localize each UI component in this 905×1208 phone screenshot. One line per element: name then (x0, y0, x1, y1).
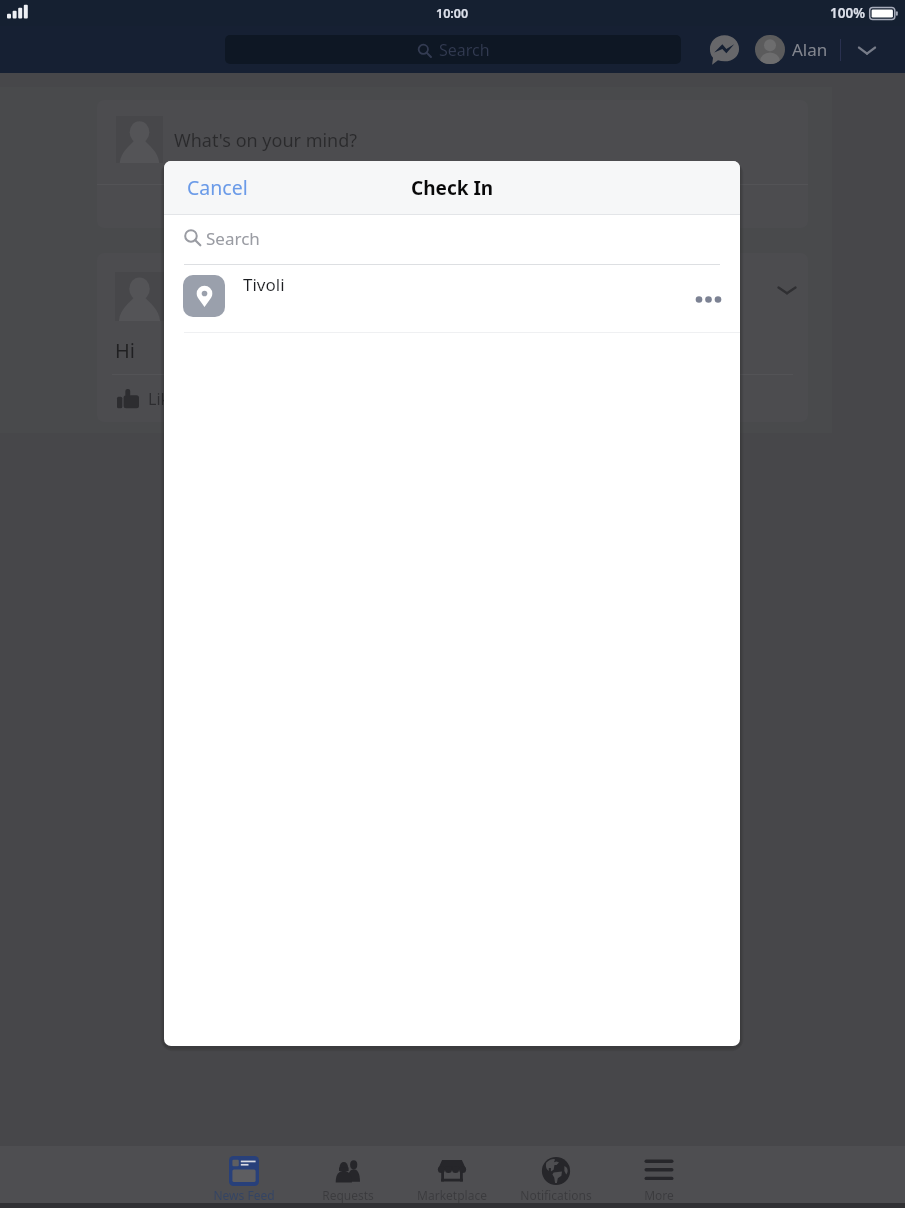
staticText: Check In (411, 175, 494, 201)
button[interactable]: Alan (755, 35, 828, 64)
button[interactable]: Account menu (853, 36, 881, 64)
button[interactable]: Search (225, 35, 681, 64)
button[interactable]: Cancel (164, 161, 262, 214)
staticText: 100% (830, 4, 865, 22)
button[interactable]: Tivoli (164, 265, 740, 332)
staticText: Marketplace (417, 1187, 487, 1203)
button[interactable]: Post options (770, 273, 804, 307)
button[interactable]: Requests (296, 1147, 400, 1203)
staticText: 10:00 (436, 5, 469, 22)
staticText: More (644, 1187, 674, 1203)
staticText: Tivoli (243, 273, 285, 296)
button[interactable]: Search (164, 215, 740, 264)
button[interactable]: What's on your mind? (97, 100, 808, 184)
staticText: Alan (792, 38, 828, 61)
button[interactable]: More (607, 1147, 711, 1203)
staticText: Cancel (187, 174, 248, 201)
staticText: Search (439, 39, 490, 61)
staticText: Search (206, 227, 260, 250)
button[interactable]: Like (97, 375, 808, 422)
button[interactable]: Marketplace (400, 1147, 504, 1203)
staticText: What's on your mind? (174, 128, 358, 153)
staticText: News Feed (213, 1187, 275, 1203)
button[interactable]: More options (687, 278, 729, 320)
staticText: Hi (115, 337, 135, 364)
button[interactable]: Messenger (709, 34, 740, 65)
button[interactable]: News Feed (192, 1147, 296, 1203)
staticText: Requests (322, 1187, 374, 1203)
staticText: Like (148, 388, 179, 410)
button[interactable]: Notifications (504, 1147, 608, 1203)
staticText: Notifications (520, 1187, 592, 1203)
